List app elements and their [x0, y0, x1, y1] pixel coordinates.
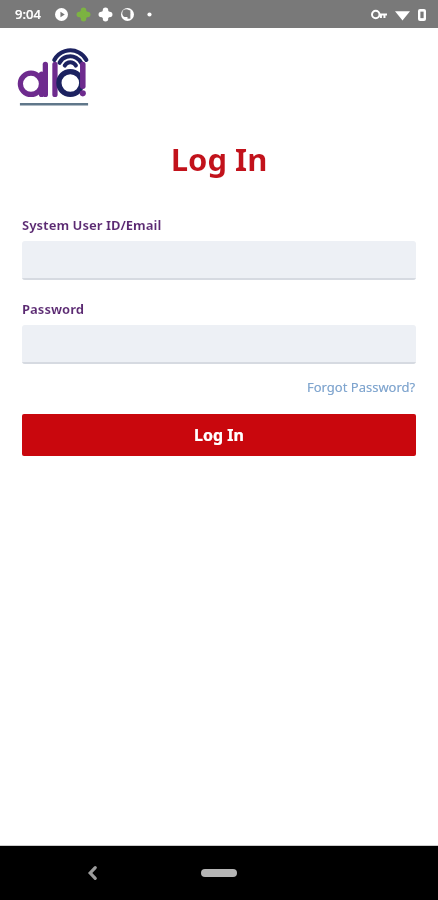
staticText: Password — [22, 300, 84, 318]
staticText: Forgot Password? — [307, 378, 416, 396]
button[interactable]: Log In — [22, 414, 416, 456]
button[interactable]: Forgot Password? — [305, 375, 418, 399]
button[interactable] — [22, 325, 416, 364]
button[interactable]: Home — [191, 858, 247, 888]
other: allo! logo — [18, 40, 114, 108]
staticText: Log In — [194, 424, 244, 446]
staticText: System User ID/Email — [22, 216, 162, 234]
staticText: Log In — [0, 138, 438, 180]
staticText: 9:04 — [15, 5, 41, 23]
button[interactable]: Back — [76, 856, 110, 890]
button[interactable] — [22, 241, 416, 280]
